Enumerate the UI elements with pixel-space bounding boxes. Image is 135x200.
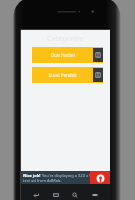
button[interactable]: Doa Harian bbox=[32, 47, 103, 63]
staticText: test ad from AdMob. bbox=[23, 178, 62, 183]
staticText: You're displaying a 320 x 50 bbox=[42, 173, 94, 178]
button[interactable]: Home bbox=[51, 190, 61, 200]
button[interactable]: Nice job! bbox=[21, 171, 110, 185]
button[interactable]: Recent apps bbox=[90, 190, 100, 200]
button[interactable]: Surat Pendek bbox=[32, 67, 103, 83]
staticText: Doa Harian bbox=[51, 52, 75, 58]
staticText: Surat Pendek bbox=[48, 72, 77, 78]
button[interactable]: Back bbox=[31, 190, 41, 200]
button[interactable]: Search bbox=[70, 190, 80, 200]
staticText: Categories bbox=[47, 34, 84, 44]
staticText: Nice job! bbox=[23, 173, 41, 178]
